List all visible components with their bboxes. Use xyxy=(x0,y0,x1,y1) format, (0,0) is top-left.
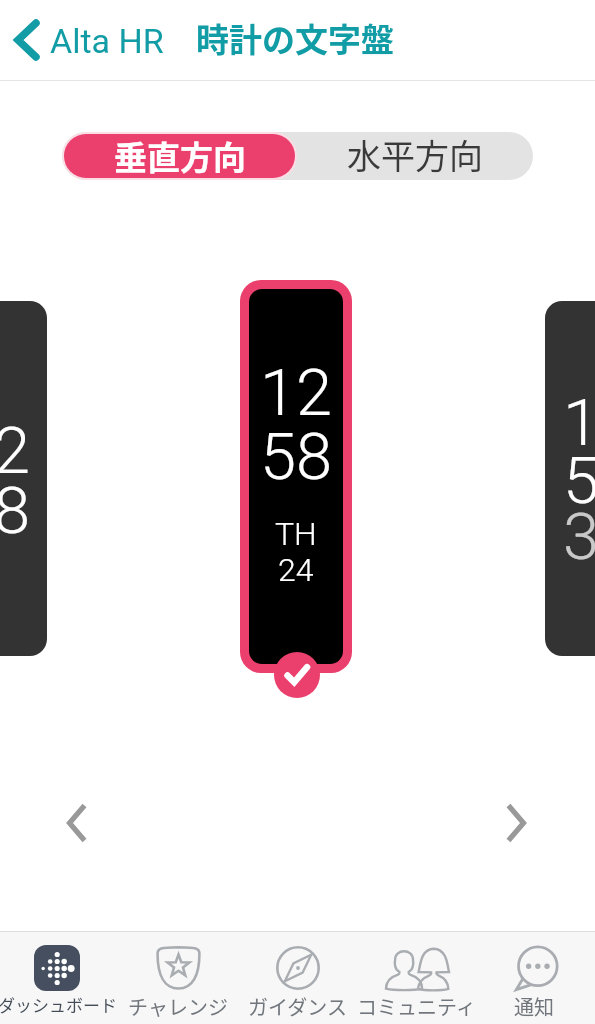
button[interactable]: Alta HR xyxy=(0,10,170,70)
staticText: 24 xyxy=(278,551,314,589)
staticText: 水平方向 xyxy=(347,132,483,178)
staticText: ガイダンス xyxy=(248,992,347,1021)
staticText: 12 xyxy=(260,355,333,431)
staticText: 53 xyxy=(563,443,595,519)
staticText: コミュニティ xyxy=(357,992,476,1021)
staticText: 39 xyxy=(563,499,595,575)
button[interactable]: 垂直方向 xyxy=(64,134,295,178)
staticText: 垂直方向 xyxy=(114,134,246,176)
button[interactable]: ガイダンス xyxy=(238,932,357,1024)
staticText: 時計の文字盤 xyxy=(196,14,394,62)
button[interactable]: チャレンジ xyxy=(119,932,238,1024)
button[interactable]: 水平方向 xyxy=(297,132,533,180)
staticText: ダッシュボード xyxy=(0,992,117,1017)
button[interactable]: 12 xyxy=(249,289,343,664)
button[interactable]: Selected watch face xyxy=(274,652,320,698)
staticText: 58 xyxy=(260,419,333,495)
button[interactable]: Previous watch face xyxy=(50,798,100,848)
staticText: 12 xyxy=(563,385,595,461)
staticText: 58 xyxy=(0,473,31,549)
button[interactable]: 12 xyxy=(0,301,47,656)
button[interactable]: 通知 xyxy=(476,932,595,1024)
staticText: TH xyxy=(275,515,317,553)
button[interactable]: Next watch face xyxy=(492,798,542,848)
staticText: 通知 xyxy=(514,992,554,1021)
button[interactable]: 12 xyxy=(545,301,595,656)
button[interactable]: ダッシュボード xyxy=(0,932,119,1024)
staticText: Alta HR xyxy=(50,21,164,61)
button[interactable]: コミュニティ xyxy=(357,932,476,1024)
staticText: チャレンジ xyxy=(128,992,228,1021)
staticText: 12 xyxy=(0,413,31,489)
